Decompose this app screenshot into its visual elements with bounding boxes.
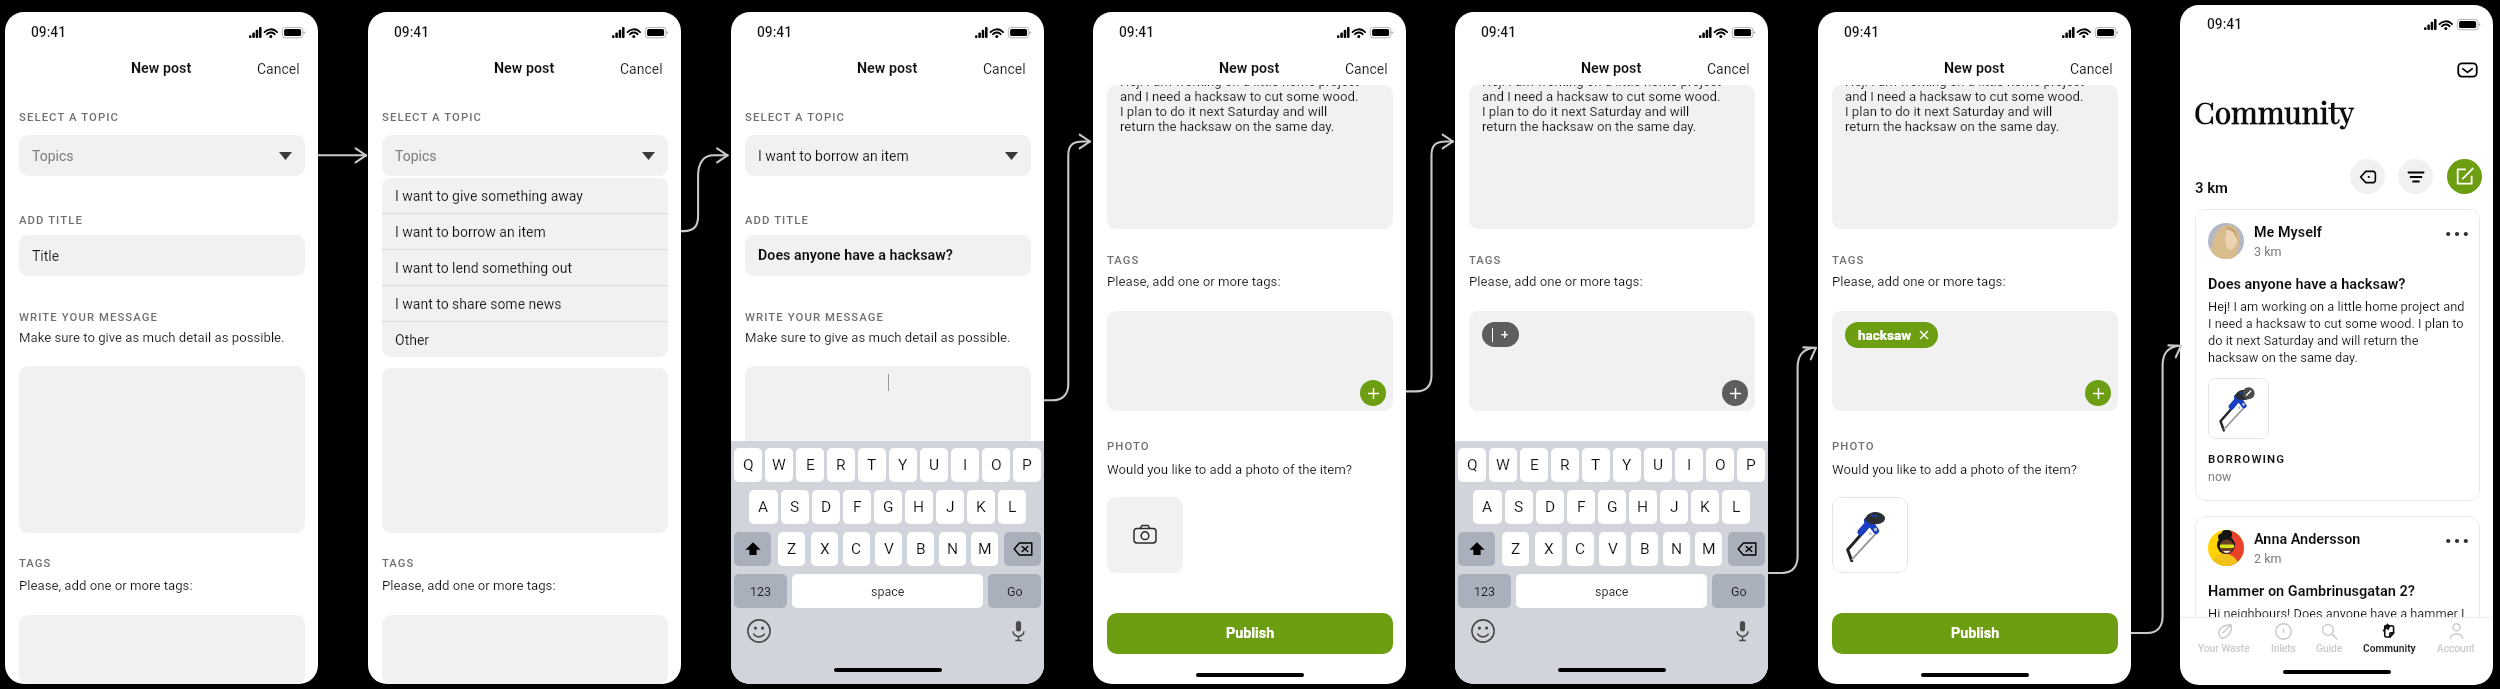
button[interactable]: K <box>967 490 995 524</box>
button[interactable]: 123 <box>734 574 787 608</box>
button[interactable]: M <box>971 532 998 566</box>
button[interactable]: A <box>749 490 778 524</box>
button[interactable]: Y <box>1613 448 1641 482</box>
button[interactable]: H <box>905 490 933 524</box>
button[interactable]: Other <box>382 322 668 357</box>
button[interactable]: Z <box>778 532 805 566</box>
button[interactable]: J <box>936 490 964 524</box>
button[interactable]: Cancel <box>620 61 663 77</box>
button[interactable]: Emoji keyboard <box>1471 619 1495 643</box>
button[interactable]: T <box>1582 448 1610 482</box>
button[interactable]: V <box>1599 532 1626 566</box>
button[interactable]: O <box>1706 448 1734 482</box>
button[interactable]: More options <box>2446 227 2468 241</box>
button[interactable]: Anna Andersson <box>2195 516 2480 638</box>
button[interactable]: I want to share some news <box>382 286 668 321</box>
button[interactable]: C <box>843 532 870 566</box>
button[interactable]: N <box>939 532 966 566</box>
button[interactable]: Your Waste <box>2196 623 2252 655</box>
button[interactable]: Cancel <box>2070 61 2113 77</box>
button[interactable]: Photo of hacksaw <box>1832 497 1908 573</box>
button[interactable]: Emoji keyboard <box>747 619 771 643</box>
button[interactable]: Tag filter <box>2350 159 2385 194</box>
button[interactable]: D <box>812 490 840 524</box>
button[interactable]: Y <box>889 448 917 482</box>
button[interactable]: O <box>982 448 1010 482</box>
button[interactable]: E <box>1520 448 1548 482</box>
button[interactable]: W <box>765 448 793 482</box>
button[interactable]: X <box>811 532 838 566</box>
button[interactable]: G <box>1598 490 1626 524</box>
button[interactable]: Topics <box>19 135 305 176</box>
button[interactable]: I want to lend something out <box>382 250 668 285</box>
button[interactable]: Dictation <box>1736 621 1749 641</box>
button[interactable]: D <box>1536 490 1564 524</box>
button[interactable]: Publish <box>1832 613 2118 654</box>
button[interactable]: F <box>1567 490 1595 524</box>
button[interactable]: X <box>1535 532 1562 566</box>
button[interactable]: K <box>1691 490 1719 524</box>
button[interactable]: E <box>796 448 824 482</box>
button[interactable]: S <box>1505 490 1533 524</box>
button[interactable]: Guide <box>2314 623 2345 655</box>
button[interactable]: R <box>827 448 855 482</box>
button[interactable]: I <box>1675 448 1703 482</box>
button[interactable]: A <box>1473 490 1502 524</box>
button[interactable]: C <box>1567 532 1594 566</box>
button[interactable]: Go <box>1712 574 1765 608</box>
button[interactable]: 123 <box>1458 574 1511 608</box>
button[interactable]: G <box>874 490 902 524</box>
button[interactable]: Publish <box>1107 613 1393 654</box>
button[interactable]: I want to borrow an item <box>382 214 668 249</box>
button[interactable]: P <box>1013 448 1041 482</box>
button[interactable]: F <box>843 490 871 524</box>
button[interactable]: Tag input <box>1482 322 1519 347</box>
button[interactable]: Cancel <box>983 61 1026 77</box>
button[interactable]: N <box>1663 532 1690 566</box>
button[interactable]: Cancel <box>257 61 300 77</box>
button[interactable]: space <box>792 574 983 608</box>
button[interactable]: Community <box>2361 623 2418 655</box>
button[interactable]: Topics <box>382 135 668 176</box>
button[interactable]: Shift <box>734 532 771 566</box>
button[interactable]: Dictation <box>1012 621 1025 641</box>
button[interactable]: Inbox <box>2457 60 2478 80</box>
button[interactable]: H <box>1629 490 1657 524</box>
button[interactable]: hacksaw <box>1845 322 1938 348</box>
button[interactable]: Add tag <box>1722 380 1748 406</box>
button[interactable]: W <box>1489 448 1517 482</box>
button[interactable]: B <box>907 532 934 566</box>
button[interactable]: Title <box>19 235 305 276</box>
button[interactable]: Add tag <box>2085 380 2111 406</box>
button[interactable]: S <box>781 490 809 524</box>
button[interactable]: Shift <box>1458 532 1495 566</box>
button[interactable]: U <box>1644 448 1672 482</box>
button[interactable]: B <box>1631 532 1658 566</box>
button[interactable]: Add tag <box>1360 380 1386 406</box>
button[interactable]: Filter <box>2398 159 2433 194</box>
button[interactable]: M <box>1695 532 1722 566</box>
button[interactable]: V <box>875 532 902 566</box>
button[interactable]: More options <box>2446 534 2468 548</box>
button[interactable]: Inlets <box>2269 623 2298 655</box>
button[interactable]: Z <box>1502 532 1529 566</box>
button[interactable]: Go <box>988 574 1041 608</box>
button[interactable]: L <box>1722 490 1750 524</box>
button[interactable]: L <box>998 490 1026 524</box>
button[interactable]: I <box>951 448 979 482</box>
button[interactable]: T <box>858 448 886 482</box>
button[interactable]: Q <box>1458 448 1486 482</box>
button[interactable]: P <box>1737 448 1765 482</box>
button[interactable]: U <box>920 448 948 482</box>
button[interactable]: Me Myself <box>2195 209 2480 501</box>
button[interactable]: I want to give something away <box>382 178 668 213</box>
button[interactable]: Q <box>734 448 762 482</box>
button[interactable]: Does anyone have a hacksaw? <box>745 235 1031 276</box>
button[interactable]: Backspace <box>1004 532 1041 566</box>
button[interactable]: Create new post <box>2447 159 2482 194</box>
button[interactable]: R <box>1551 448 1579 482</box>
button[interactable]: Backspace <box>1728 532 1765 566</box>
button[interactable]: space <box>1516 574 1707 608</box>
button[interactable]: Cancel <box>1707 61 1750 77</box>
button[interactable]: Account <box>2435 623 2477 655</box>
